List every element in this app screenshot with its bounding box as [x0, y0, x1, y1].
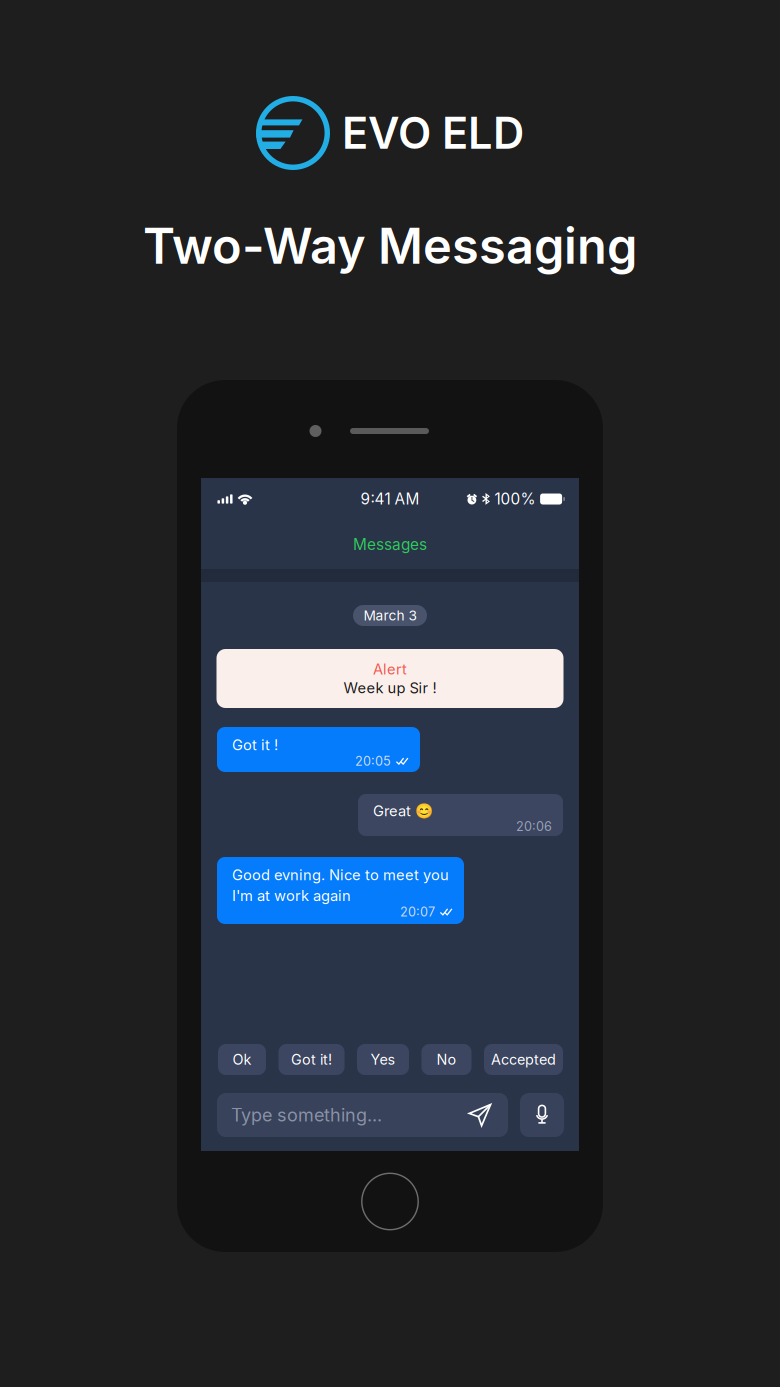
button[interactable]: Messages: [201, 520, 579, 569]
staticText: Week up Sir !: [343, 679, 436, 697]
staticText: Ok: [232, 1051, 251, 1068]
staticText: Good evning. Nice to meet you: [232, 866, 449, 884]
staticText: 20:05: [355, 754, 391, 769]
button[interactable]: Yes: [357, 1044, 409, 1075]
button[interactable]: Ok: [218, 1044, 266, 1075]
staticText: Yes: [370, 1051, 395, 1068]
staticText: 9:41 AM: [360, 490, 419, 508]
button[interactable]: No: [421, 1044, 471, 1075]
button[interactable]: Type something...: [217, 1093, 508, 1137]
staticText: March 3: [363, 607, 416, 624]
staticText: 20:06: [516, 819, 552, 834]
staticText: Type something...: [231, 1104, 382, 1126]
staticText: Accepted: [491, 1051, 556, 1068]
staticText: 20:07: [400, 904, 435, 920]
button[interactable]: Record voice message: [520, 1093, 564, 1137]
staticText: Two-Way Messaging: [143, 217, 637, 275]
staticText: EVO ELD: [342, 107, 524, 159]
staticText: Messages: [353, 535, 427, 554]
staticText: 100%: [494, 490, 535, 508]
staticText: Got it !: [232, 736, 278, 754]
staticText: I'm at work again: [232, 887, 351, 904]
staticText: Got it!: [291, 1051, 332, 1068]
staticText: Great 😊: [373, 802, 433, 820]
staticText: Alert: [373, 660, 407, 678]
button[interactable]: Accepted: [484, 1044, 563, 1075]
staticText: No: [436, 1051, 456, 1068]
button[interactable]: Got it!: [278, 1044, 344, 1075]
